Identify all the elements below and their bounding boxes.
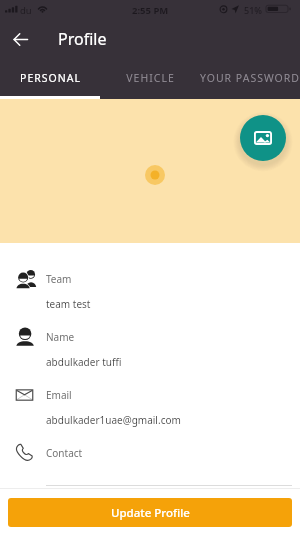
button[interactable]: Team <box>0 254 300 312</box>
staticText: Contact <box>46 446 83 460</box>
staticText: 51% <box>244 4 262 16</box>
staticText: 2:55 PM <box>132 4 169 17</box>
button[interactable]: PERSONAL <box>0 58 100 99</box>
staticText: Name <box>46 330 75 344</box>
staticText: PERSONAL <box>20 71 81 85</box>
button[interactable]: Back <box>7 26 33 52</box>
staticText: Profile <box>58 28 107 50</box>
staticText: YOUR PASSWORD <box>200 71 300 85</box>
staticText: abdulkader tuffi <box>46 355 122 369</box>
staticText: abdulkader1uae@gmail.com <box>46 413 181 427</box>
staticText: Team <box>46 272 72 286</box>
button[interactable]: VEHICLE <box>100 58 200 99</box>
staticText: du <box>20 4 32 17</box>
button[interactable]: Contact <box>0 428 300 486</box>
button[interactable]: Update Profile <box>8 498 292 527</box>
staticText: VEHICLE <box>126 71 175 85</box>
button[interactable]: Change profile photo <box>240 115 286 161</box>
button[interactable]: YOUR PASSWORD <box>200 58 300 99</box>
button[interactable]: Email <box>0 370 300 428</box>
staticText: Email <box>46 388 72 402</box>
button[interactable]: Name <box>0 312 300 370</box>
staticText: Update Profile <box>111 505 190 521</box>
staticText: team test <box>46 297 91 311</box>
